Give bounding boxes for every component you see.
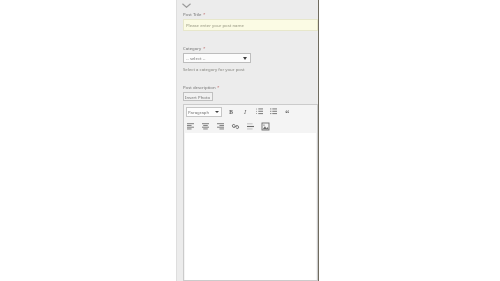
button[interactable]: Align left <box>186 122 195 131</box>
staticText: Select a category for your post <box>183 66 245 72</box>
button[interactable]: Align center <box>201 122 210 131</box>
button[interactable]: Bulleted list <box>255 107 264 116</box>
button[interactable]: Bold <box>227 107 236 116</box>
button[interactable]: Align right <box>216 122 225 131</box>
staticText: Please enter your post name <box>186 22 244 28</box>
button[interactable]: Insert image <box>261 122 270 131</box>
staticText: Paragraph <box>188 109 210 115</box>
button[interactable]: Blockquote <box>283 107 292 116</box>
button[interactable]: Horizontal rule <box>246 122 255 131</box>
staticText: Category <box>183 45 202 51</box>
button[interactable]: -- select -- <box>183 53 251 63</box>
button[interactable]: Collapse section <box>177 0 318 11</box>
staticText: “ <box>285 107 290 116</box>
staticText: Post description <box>183 84 216 90</box>
staticText: -- select -- <box>186 55 206 61</box>
button[interactable] <box>185 133 316 281</box>
staticText: Insert Photo <box>185 94 211 100</box>
staticText: I <box>244 108 247 116</box>
button[interactable]: Paragraph <box>186 107 222 117</box>
staticText: B <box>229 108 234 116</box>
staticText: * <box>216 84 220 90</box>
button[interactable]: Numbered list <box>269 107 278 116</box>
button[interactable]: Please enter your post name <box>183 19 318 31</box>
button[interactable]: Insert link <box>231 122 240 131</box>
button[interactable]: Italic <box>241 107 250 116</box>
staticText: Post Title <box>183 11 202 17</box>
button[interactable]: Insert Photo <box>183 92 213 101</box>
staticText: * <box>202 45 206 51</box>
staticText: * <box>202 11 206 17</box>
